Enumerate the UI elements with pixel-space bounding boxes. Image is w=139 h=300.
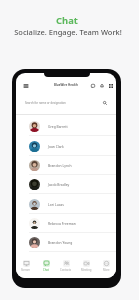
button[interactable]: Rebecca Freeman [16, 214, 116, 233]
staticText: Meeting [81, 268, 92, 272]
button[interactable]: Apps [106, 81, 115, 90]
button[interactable]: Greg Barrett [16, 117, 116, 136]
staticText: Rebecca Freeman [48, 221, 76, 226]
staticText: Contacts [60, 268, 72, 272]
staticText: Stream [21, 268, 31, 272]
button[interactable]: Jacob Bradley [16, 175, 116, 194]
button[interactable]: Messages [88, 81, 97, 90]
staticText: Chat [56, 14, 78, 27]
button[interactable]: Chat [36, 255, 56, 278]
staticText: Brandon Lynch [48, 163, 72, 168]
staticText: More [103, 268, 110, 272]
button[interactable]: Stream [16, 255, 36, 278]
button[interactable]: Brandon Lynch [16, 156, 116, 175]
staticText: Search for name or designation [25, 101, 66, 105]
button[interactable]: Search for name or designation [16, 95, 116, 111]
staticText: Jacob Bradley [48, 182, 70, 187]
staticText: Greg Barrett [48, 124, 68, 129]
button[interactable]: Menu [21, 81, 30, 90]
button[interactable]: Joan Clark [16, 137, 116, 156]
button[interactable]: Meeting [76, 255, 96, 278]
staticText: Lori Lucas [48, 202, 64, 207]
button[interactable]: Notifications [97, 81, 106, 90]
staticText: Joan Clark [48, 144, 64, 149]
button[interactable]: More [96, 255, 116, 278]
staticText: Chat [43, 268, 49, 272]
staticText: BlueWire Health [54, 83, 78, 87]
staticText: Brandon Young [48, 240, 73, 245]
button[interactable]: Contacts [56, 255, 76, 278]
staticText: Socialize. Engage. Team Work! [14, 27, 122, 37]
button[interactable]: Lori Lucas [16, 195, 116, 214]
button[interactable]: Brandon Young [16, 233, 116, 252]
